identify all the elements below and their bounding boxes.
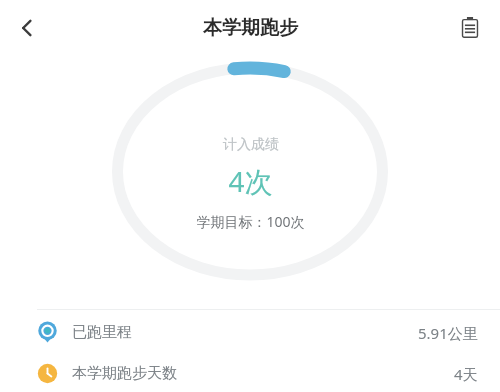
staticText: 4次 (228, 162, 273, 200)
staticText: 5.91公里 (418, 323, 478, 343)
staticText: 本学期跑步天数 (72, 364, 177, 383)
button[interactable]: 已跑里程 (0, 310, 500, 355)
staticText: 学期目标：100次 (196, 212, 305, 231)
staticText: 4天 (454, 364, 478, 384)
button[interactable]: Back (6, 6, 50, 50)
button[interactable]: Records (448, 6, 492, 50)
staticText: 已跑里程 (72, 323, 132, 342)
staticText: 本学期跑步 (203, 16, 298, 40)
button[interactable]: 本学期跑步天数 (0, 355, 500, 392)
staticText: 计入成绩 (223, 136, 279, 154)
